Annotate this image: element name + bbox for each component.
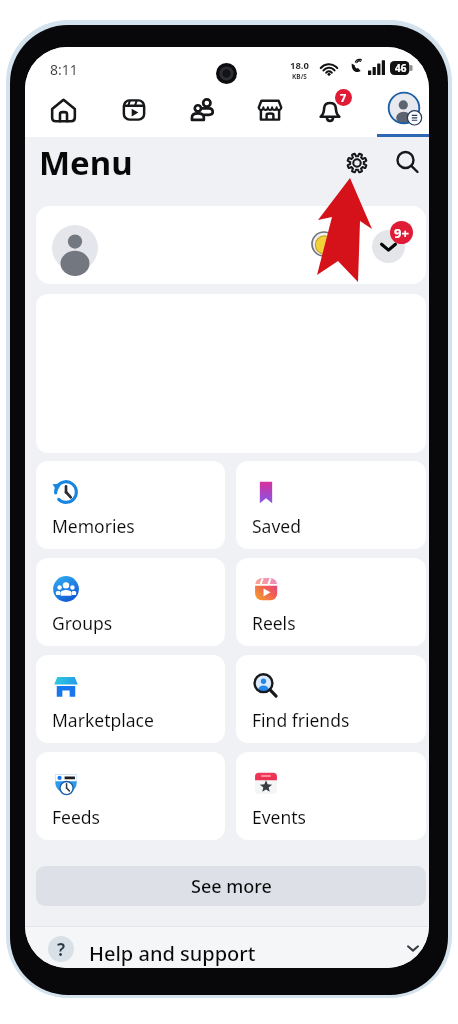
staticText: 18.0 bbox=[290, 59, 309, 72]
staticText: 8:11 bbox=[50, 60, 78, 79]
button[interactable]: Memories bbox=[36, 461, 225, 549]
button[interactable]: Your profile menu bbox=[388, 92, 422, 126]
button[interactable]: Home bbox=[44, 91, 82, 129]
staticText: ? bbox=[57, 938, 66, 961]
button[interactable]: Events bbox=[236, 752, 426, 840]
button[interactable]: Groups bbox=[36, 558, 225, 646]
button[interactable]: ? bbox=[25, 926, 429, 968]
staticText: Reels bbox=[252, 611, 296, 635]
staticText: KB/S bbox=[292, 72, 307, 81]
button[interactable]: Saved bbox=[236, 461, 426, 549]
button[interactable]: Marketplace bbox=[251, 91, 289, 129]
staticText: Saved bbox=[252, 514, 301, 538]
button[interactable]: Marketplace bbox=[36, 655, 225, 743]
button[interactable]: Friends bbox=[183, 91, 221, 129]
staticText: Menu bbox=[39, 140, 133, 185]
button[interactable]: 9+ bbox=[36, 206, 426, 284]
staticText: Feeds bbox=[52, 805, 100, 829]
staticText: Marketplace bbox=[52, 708, 154, 732]
button[interactable]: Video bbox=[115, 91, 153, 129]
button[interactable]: Feeds bbox=[36, 752, 225, 840]
button[interactable]: Reels bbox=[236, 558, 426, 646]
button[interactable]: Search bbox=[386, 141, 428, 183]
staticText: 7 bbox=[340, 90, 347, 105]
staticText: Help and support bbox=[89, 940, 256, 967]
button[interactable]: See more bbox=[36, 866, 426, 906]
staticText: Find friends bbox=[252, 708, 350, 732]
button[interactable]: Settings bbox=[336, 142, 378, 184]
staticText: Memories bbox=[52, 514, 135, 538]
button[interactable]: Notifications bbox=[314, 90, 352, 128]
staticText: Groups bbox=[52, 611, 113, 635]
button[interactable]: Find friends bbox=[236, 655, 426, 743]
staticText: See more bbox=[191, 874, 272, 899]
staticText: 46 bbox=[395, 61, 407, 75]
staticText: Events bbox=[252, 805, 307, 829]
staticText: 9+ bbox=[394, 224, 409, 242]
